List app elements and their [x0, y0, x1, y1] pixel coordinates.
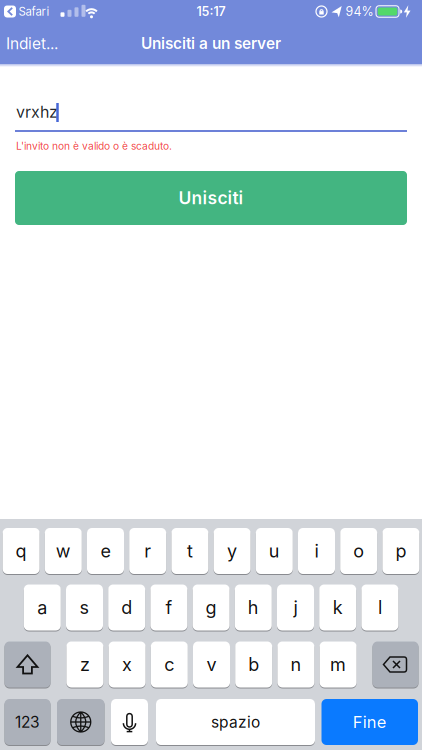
button[interactable]: g	[193, 584, 230, 631]
staticText: q	[16, 540, 27, 562]
staticText: p	[395, 540, 406, 562]
staticText: y	[227, 540, 237, 562]
staticText: vrxhz	[16, 102, 58, 122]
staticText: u	[269, 540, 280, 562]
staticText: f	[165, 597, 172, 618]
button[interactable]: spazio	[156, 698, 315, 745]
button[interactable]: y	[214, 527, 251, 574]
button[interactable]: Unisciti	[15, 171, 407, 225]
staticText: t	[187, 540, 193, 562]
staticText: x	[122, 654, 132, 675]
button[interactable]: Shift	[4, 641, 50, 688]
staticText: Unisciti	[178, 187, 243, 209]
staticText: i	[314, 540, 318, 562]
button[interactable]: e	[87, 527, 124, 574]
staticText: j	[293, 597, 297, 618]
button[interactable]: u	[256, 527, 293, 574]
staticText: d	[121, 597, 132, 618]
button[interactable]: q	[3, 527, 40, 574]
staticText: l	[378, 597, 382, 618]
staticText: g	[206, 597, 217, 618]
staticText: n	[290, 654, 301, 675]
button[interactable]: a	[24, 584, 61, 631]
button[interactable]: z	[66, 641, 103, 688]
button[interactable]: t	[171, 527, 208, 574]
button[interactable]: Dictate	[111, 698, 148, 745]
button[interactable]: h	[235, 584, 272, 631]
button[interactable]: Fine	[321, 698, 418, 745]
staticText: Indiet...	[6, 34, 58, 53]
staticText: L'invito non è valido o è scaduto.	[16, 140, 172, 152]
button[interactable]: l	[361, 584, 398, 631]
button[interactable]: x	[109, 641, 146, 688]
button[interactable]: s	[66, 584, 103, 631]
button[interactable]: r	[129, 527, 166, 574]
staticText: 123	[15, 713, 40, 731]
staticText: o	[353, 540, 364, 562]
staticText: Fine	[353, 712, 387, 732]
staticText: a	[37, 597, 47, 618]
button[interactable]: Delete	[372, 641, 418, 688]
staticText: r	[144, 540, 151, 562]
staticText: spazio	[211, 713, 260, 731]
staticText: c	[164, 654, 174, 675]
staticText: s	[79, 597, 89, 618]
button[interactable]: Back to Safari	[3, 4, 55, 18]
staticText: b	[248, 654, 259, 675]
button[interactable]: n	[277, 641, 314, 688]
staticText: w	[56, 540, 71, 562]
button[interactable]: k	[319, 584, 356, 631]
staticText: e	[100, 540, 110, 562]
button[interactable]: c	[151, 641, 188, 688]
button[interactable]: v	[193, 641, 230, 688]
button[interactable]: i	[298, 527, 335, 574]
staticText: m	[330, 654, 346, 675]
button[interactable]: p	[382, 527, 419, 574]
staticText: k	[333, 597, 343, 618]
staticText: Unisciti a un server	[141, 34, 281, 53]
button[interactable]: Indiet...	[6, 34, 106, 53]
staticText: 94%	[345, 4, 373, 19]
staticText: 15:17	[196, 4, 225, 19]
button[interactable]: o	[340, 527, 377, 574]
staticText: Safari	[18, 4, 49, 18]
staticText: h	[248, 597, 259, 618]
button[interactable]: d	[108, 584, 145, 631]
button[interactable]: m	[320, 641, 357, 688]
staticText: v	[206, 654, 216, 675]
button[interactable]: f	[150, 584, 187, 631]
button[interactable]: w	[45, 527, 82, 574]
button[interactable]: Next keyboard	[57, 698, 104, 745]
button[interactable]: j	[277, 584, 314, 631]
button[interactable]: b	[235, 641, 272, 688]
button[interactable]: 123	[4, 698, 50, 745]
staticText: z	[80, 654, 90, 675]
